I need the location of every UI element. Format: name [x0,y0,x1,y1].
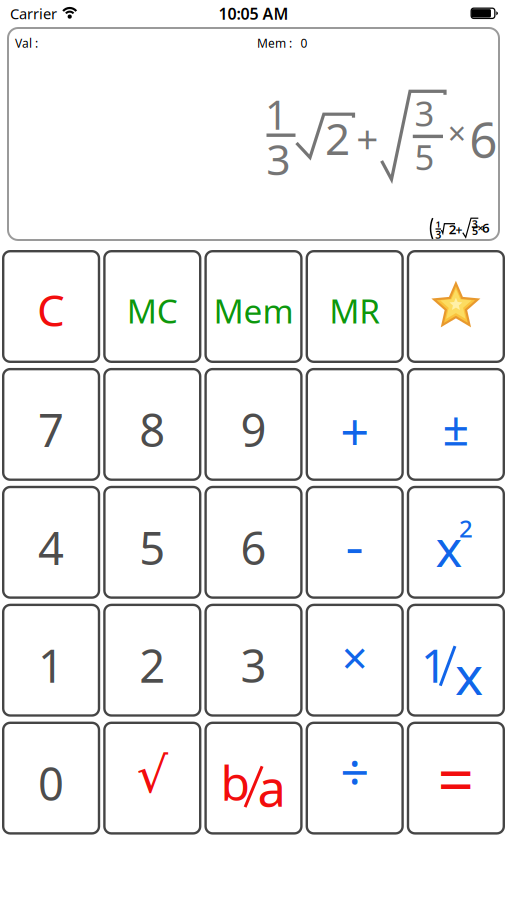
staticText: 3 [240,635,266,695]
staticText: √ [137,747,168,803]
staticText: 1 [38,635,64,695]
button[interactable]: 7 [2,368,100,481]
staticText: Mem [213,288,293,333]
staticText: 3 [472,217,478,231]
staticText: = [437,736,474,821]
staticText: b [220,750,250,814]
staticText: 6 [482,219,490,236]
staticText: x [455,639,483,710]
staticText: 1 [265,88,288,141]
staticText: Val : [15,35,38,51]
staticText: 7 [38,399,64,459]
staticText: Carrier [10,4,57,23]
staticText: 5 [472,224,478,238]
button[interactable]: 0 [2,722,100,835]
staticText: 2 [139,635,165,695]
staticText: × [477,221,483,235]
button[interactable]: + [306,368,404,481]
staticText: 5 [414,134,434,180]
staticText: 10:05 AM [218,3,288,24]
staticText: 6 [469,106,497,171]
button[interactable]: MC [103,250,201,363]
button[interactable]: 1 over x [407,604,505,717]
button[interactable]: 4 [2,486,100,599]
staticText: 9 [240,399,266,459]
button[interactable]: 5 [103,486,201,599]
staticText: 4 [38,517,64,577]
staticText: 2 [459,512,473,544]
staticText: 8 [139,399,165,459]
button[interactable]: Mem [204,250,303,363]
button[interactable]: 3 [204,604,303,717]
staticText: 1 [421,635,447,695]
staticText: a [257,753,285,821]
button[interactable]: 9 [204,368,303,481]
staticText: 2 [325,109,350,167]
staticText: ± [442,396,469,458]
staticText: 1 [435,218,440,230]
staticText: C [37,280,65,339]
button[interactable]: 8 [103,368,201,481]
staticText: 2 [449,220,457,238]
staticText: MR [329,288,380,333]
staticText: x [435,514,462,581]
staticText: 3 [266,130,290,187]
button[interactable]: minus [306,486,404,599]
button[interactable]: √ [103,722,201,835]
staticText: + [455,222,462,238]
staticText: Mem : [257,35,292,51]
button[interactable]: x squared [407,486,505,599]
button[interactable]: = [407,722,505,835]
button[interactable]: 2 [103,604,201,717]
staticText: + [356,112,378,164]
staticText: MC [127,288,178,333]
button[interactable]: 1 [2,604,100,717]
staticText: 0 [38,753,64,813]
staticText: ÷ [340,737,369,805]
button[interactable]: MR [306,250,404,363]
staticText: + [340,398,369,465]
staticText: 6 [240,517,266,577]
button[interactable]: 6 [204,486,303,599]
button[interactable]: ± [407,368,505,481]
button[interactable]: C [2,250,100,363]
button[interactable]: × [306,604,404,717]
staticText: 3 [414,90,434,136]
staticText: 3 [435,227,441,242]
staticText: × [342,627,368,687]
staticText: 0 [300,35,307,51]
staticText: 5 [139,517,165,577]
button[interactable]: ÷ [306,722,404,835]
staticText: × [448,112,466,154]
button[interactable]: b over a [204,722,303,835]
button[interactable]: Favorites [407,250,505,363]
